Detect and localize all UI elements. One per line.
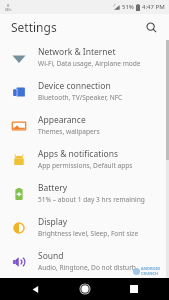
staticText: 0 bbox=[7, 3, 10, 8]
staticText: Device connection bbox=[38, 80, 111, 92]
staticText: 51% – about 1 day 3 hrs remaining bbox=[38, 195, 145, 204]
staticText: CRUNCH bbox=[141, 271, 159, 276]
button[interactable]: Network & Internet bbox=[0, 40, 169, 74]
staticText: Network & Internet bbox=[38, 46, 116, 58]
staticText: 4:47 PM bbox=[142, 3, 165, 11]
staticText: Sound bbox=[38, 250, 64, 262]
staticText: Battery bbox=[38, 182, 68, 194]
staticText: Brightness level, Sleep, Font size bbox=[38, 229, 139, 238]
staticText: Audio, Ringtone, Do not disturb bbox=[38, 263, 136, 272]
staticText: Themes, wallpapers bbox=[38, 127, 100, 136]
staticText: 51% bbox=[122, 3, 134, 11]
staticText: ANDROID bbox=[141, 266, 161, 271]
button[interactable]: Recent apps bbox=[120, 278, 148, 300]
staticText: Display bbox=[38, 216, 67, 228]
staticText: Apps & notifications bbox=[38, 148, 118, 160]
button[interactable]: Sound bbox=[0, 244, 169, 278]
staticText: KB/s bbox=[5, 8, 12, 12]
button[interactable]: Search bbox=[141, 17, 161, 37]
button[interactable]: Back bbox=[21, 278, 49, 300]
staticText: Appearance bbox=[38, 114, 86, 126]
button[interactable]: Appearance bbox=[0, 108, 169, 142]
staticText: Bluetooth, TV/Speaker, NFC bbox=[38, 93, 123, 102]
staticText: Settings bbox=[11, 19, 57, 35]
button[interactable]: Apps & notifications bbox=[0, 142, 169, 176]
staticText: Wi-Fi, Data usage, Airplane mode bbox=[38, 59, 141, 68]
button[interactable]: Battery bbox=[0, 176, 169, 210]
staticText: App permissions, Default apps bbox=[38, 161, 133, 170]
button[interactable]: Home bbox=[71, 278, 99, 300]
button[interactable]: Device connection bbox=[0, 74, 169, 108]
button[interactable]: Display bbox=[0, 210, 169, 244]
